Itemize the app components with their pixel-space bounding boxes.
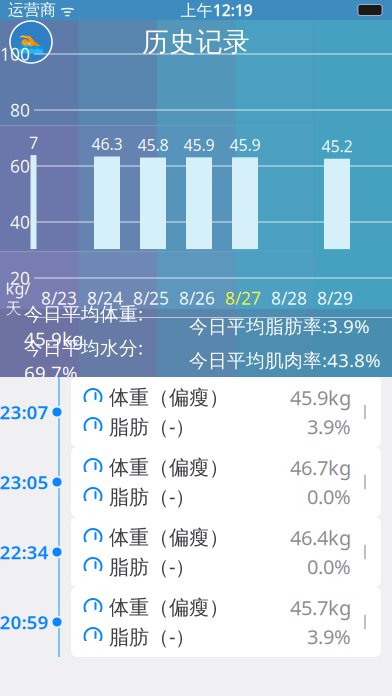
staticText: 45.9kg: [290, 384, 351, 411]
staticText: 运营商: [8, 0, 56, 20]
staticText: 46.4kg: [290, 524, 351, 551]
staticText: 40: [10, 210, 30, 233]
staticText: 今日平均水分:69.7%: [24, 335, 143, 385]
staticText: 8/25: [133, 286, 169, 309]
staticText: 80: [10, 98, 30, 121]
staticText: 45.9: [183, 134, 214, 155]
staticText: 45.9: [229, 134, 260, 155]
staticText: 7: [29, 132, 38, 153]
staticText: 体重（偏瘦）: [109, 525, 229, 550]
staticText: 3.9%: [307, 623, 351, 650]
staticText: 脂肪（-）: [109, 413, 195, 440]
staticText: 45.8: [137, 134, 168, 155]
staticText: ᯤ: [56, 0, 75, 21]
staticText: 体重（偏瘦）: [109, 385, 229, 410]
staticText: 0.0%: [307, 483, 351, 510]
staticText: 8/23: [41, 286, 77, 309]
staticText: 8/26: [179, 286, 215, 309]
staticText: 体重（偏瘦）: [109, 595, 229, 620]
staticText: 46.7kg: [290, 454, 351, 481]
staticText: 45.2: [321, 135, 352, 157]
staticText: 🏊: [17, 30, 44, 54]
staticText: 3.9%: [307, 413, 351, 440]
staticText: 脂肪（-）: [109, 623, 195, 650]
staticText: 8/24: [87, 286, 123, 309]
staticText: 上午12:19: [180, 0, 252, 21]
button[interactable]: 体重（偏瘦）: [71, 517, 381, 587]
staticText: 历史记录: [142, 26, 250, 58]
staticText: 今日平均肌肉率:43.8%: [189, 348, 381, 372]
staticText: 体重（偏瘦）: [109, 455, 229, 480]
staticText: 脂肪（-）: [109, 553, 195, 580]
staticText: 22:34: [0, 540, 48, 564]
staticText: 0.0%: [307, 553, 351, 580]
staticText: 脂肪（-）: [109, 483, 195, 510]
staticText: 8/29: [317, 286, 353, 309]
staticText: 100: [0, 42, 30, 65]
staticText: 45.7kg: [290, 594, 351, 621]
staticText: 今日平均体重:45.9kg: [24, 301, 143, 351]
button[interactable]: 体重（偏瘦）: [71, 377, 381, 447]
staticText: 今日平均脂肪率:3.9%: [189, 314, 370, 338]
button[interactable]: 体重（偏瘦）: [71, 587, 381, 657]
staticText: 46.3: [91, 133, 122, 154]
staticText: 23:07: [0, 400, 48, 424]
staticText: kg/天: [5, 277, 30, 318]
staticText: 8/28: [271, 286, 307, 309]
staticText: 20:59: [0, 610, 48, 634]
staticText: 23:05: [0, 470, 48, 494]
button[interactable]: 个人头像: [10, 21, 52, 63]
staticText: 60: [10, 154, 30, 177]
staticText: 8/27: [225, 286, 261, 309]
staticText: 20: [10, 266, 30, 289]
button[interactable]: 体重（偏瘦）: [71, 447, 381, 517]
